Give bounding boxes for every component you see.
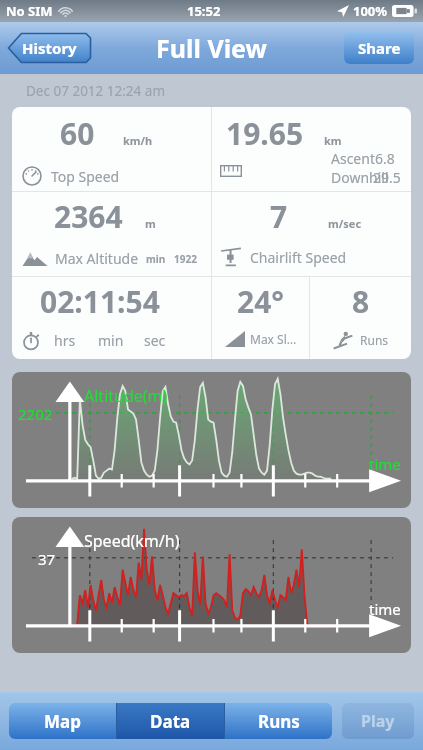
- staticText: min: [146, 252, 166, 266]
- staticText: History: [22, 38, 77, 58]
- button[interactable]: 24°: [212, 277, 309, 359]
- button[interactable]: 2364: [12, 192, 211, 276]
- staticText: 2202: [18, 404, 53, 424]
- button[interactable]: Data: [117, 703, 224, 739]
- staticText: Play: [361, 710, 395, 732]
- staticText: Map: [44, 710, 81, 733]
- staticText: min: [98, 331, 124, 350]
- staticText: Full View: [156, 31, 267, 65]
- staticText: 60: [60, 113, 95, 154]
- staticText: m/sec: [328, 216, 362, 231]
- staticText: time: [369, 454, 401, 474]
- button[interactable]: 02:11:54: [12, 277, 211, 359]
- staticText: 1922: [174, 252, 197, 266]
- staticText: Altitude(m): [84, 385, 168, 407]
- staticText: m: [145, 216, 156, 231]
- staticText: Share: [358, 38, 401, 58]
- staticText: 24°: [237, 281, 285, 322]
- staticText: Downhill: [331, 168, 389, 187]
- staticText: Dec 07 2012 12:24 am: [26, 82, 166, 100]
- staticText: Max Altitude: [55, 249, 139, 268]
- button[interactable]: Share: [344, 32, 414, 64]
- staticText: 2364: [54, 196, 123, 237]
- staticText: 37: [38, 549, 56, 569]
- staticText: Runs: [258, 710, 300, 733]
- staticText: 6.8: [375, 149, 395, 168]
- staticText: Max Sl…: [250, 331, 297, 347]
- staticText: km: [324, 133, 342, 148]
- button[interactable]: 60: [12, 107, 211, 191]
- staticText: time: [369, 599, 401, 619]
- staticText: 15:52: [187, 2, 221, 20]
- staticText: Runs: [360, 332, 389, 348]
- staticText: 7: [270, 196, 288, 237]
- button[interactable]: Runs: [225, 703, 332, 739]
- staticText: sec: [144, 331, 166, 350]
- button[interactable]: Play: [342, 703, 414, 739]
- button[interactable]: Altitude chart: [12, 372, 411, 508]
- button[interactable]: History: [7, 32, 92, 64]
- staticText: Data: [150, 710, 191, 733]
- staticText: 02:11:54: [40, 281, 160, 322]
- staticText: km/h: [123, 133, 153, 148]
- staticText: Ascent: [331, 149, 375, 168]
- button[interactable]: 8: [310, 277, 411, 359]
- staticText: 100%: [353, 2, 388, 20]
- staticText: 8: [352, 281, 370, 322]
- staticText: No SIM: [6, 2, 53, 20]
- staticText: Top Speed: [51, 167, 120, 186]
- staticText: hrs: [54, 331, 76, 350]
- staticText: 29.5: [373, 168, 401, 187]
- button[interactable]: 7: [212, 192, 411, 276]
- button[interactable]: 19.65: [212, 107, 411, 191]
- button[interactable]: Map: [9, 703, 116, 739]
- button[interactable]: Speed chart: [12, 517, 411, 653]
- staticText: Speed(km/h): [84, 530, 180, 552]
- staticText: Chairlift Speed: [250, 248, 347, 267]
- staticText: 19.65: [226, 113, 304, 154]
